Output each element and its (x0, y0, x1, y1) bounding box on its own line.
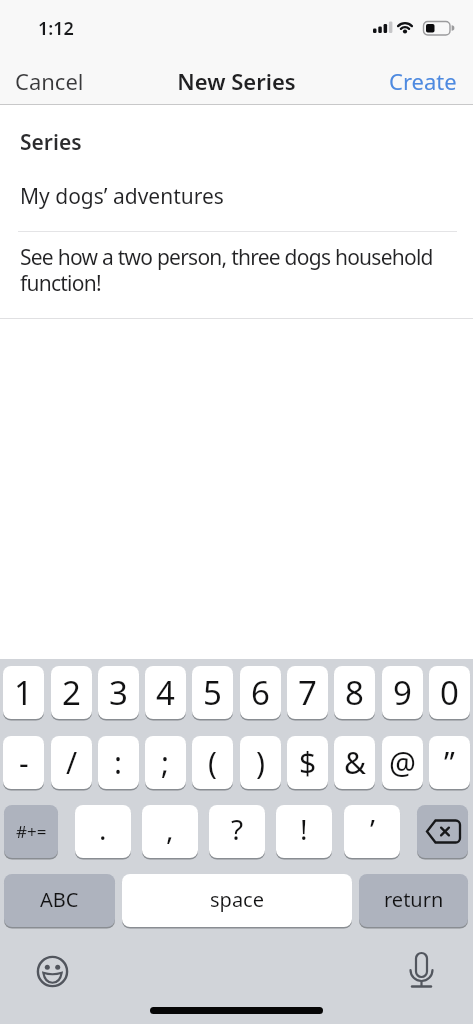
staticText: 2 (62, 670, 81, 715)
button[interactable]: My dogs’ adventures (20, 182, 450, 211)
button[interactable]: . (75, 805, 131, 858)
button[interactable] (417, 805, 468, 858)
staticText: space (210, 886, 264, 913)
button[interactable]: ? (209, 805, 265, 858)
staticText: ABC (40, 886, 79, 913)
button[interactable]: #+= (4, 805, 58, 858)
button[interactable]: - (3, 736, 44, 789)
staticText: $ (299, 742, 317, 783)
staticText: #+= (16, 820, 47, 843)
button[interactable]: 2 (51, 666, 92, 719)
button[interactable]: / (51, 736, 92, 789)
staticText: New Series (0, 66, 473, 96)
staticText: Cancel (15, 66, 84, 96)
staticText: ; (161, 742, 170, 783)
button[interactable]: & (334, 736, 375, 789)
staticText: , (166, 810, 174, 848)
button[interactable]: See how a two person, three dogs househo… (20, 243, 472, 297)
staticText: & (344, 742, 366, 783)
staticText: 0 (440, 670, 459, 715)
staticText: 3 (109, 670, 128, 715)
staticText: 5 (203, 670, 222, 715)
button[interactable]: 1 (3, 666, 44, 719)
staticText: My dogs’ adventures (20, 182, 224, 211)
button[interactable]: : (98, 736, 139, 789)
staticText: Create (389, 66, 457, 96)
button[interactable]: return (359, 874, 468, 927)
button[interactable]: @ (382, 736, 423, 789)
staticText: 9 (393, 670, 412, 715)
staticText: 6 (251, 670, 270, 715)
staticText: 8 (345, 670, 364, 715)
staticText: See how a two person, three dogs househo… (20, 243, 433, 297)
button[interactable]: 4 (145, 666, 186, 719)
staticText: ? (231, 810, 244, 848)
staticText: ! (300, 810, 308, 848)
button[interactable]: Cancel (10, 61, 89, 101)
staticText: ( (208, 742, 217, 783)
button[interactable]: ! (276, 805, 332, 858)
button[interactable]: ; (145, 736, 186, 789)
button[interactable]: 7 (287, 666, 328, 719)
button[interactable]: space (122, 874, 352, 927)
button[interactable]: 0 (429, 666, 470, 719)
button[interactable]: Create (384, 61, 462, 101)
staticText: return (384, 886, 444, 913)
button[interactable]: $ (287, 736, 328, 789)
staticText: ’ (370, 810, 375, 848)
staticText: 1 (14, 670, 33, 715)
staticText: ) (256, 742, 265, 783)
button[interactable]: 8 (334, 666, 375, 719)
staticText: ” (444, 742, 455, 783)
button[interactable]: ABC (4, 874, 115, 927)
button[interactable]: , (142, 805, 198, 858)
button[interactable]: 3 (98, 666, 139, 719)
staticText: 1:12 (38, 16, 74, 41)
staticText: @ (389, 742, 416, 783)
button[interactable]: ) (240, 736, 281, 789)
button[interactable]: 9 (382, 666, 423, 719)
staticText: : (114, 742, 123, 783)
staticText: . (99, 810, 107, 848)
button[interactable] (405, 950, 439, 990)
button[interactable]: ’ (344, 805, 400, 858)
staticText: - (19, 742, 29, 783)
staticText: / (66, 742, 78, 783)
staticText: 4 (156, 670, 175, 715)
staticText: 7 (298, 670, 317, 715)
button[interactable]: 5 (192, 666, 233, 719)
button[interactable]: ” (429, 736, 470, 789)
button[interactable]: ( (192, 736, 233, 789)
button[interactable]: 6 (240, 666, 281, 719)
staticText: Series (20, 128, 82, 157)
button[interactable] (36, 955, 69, 988)
